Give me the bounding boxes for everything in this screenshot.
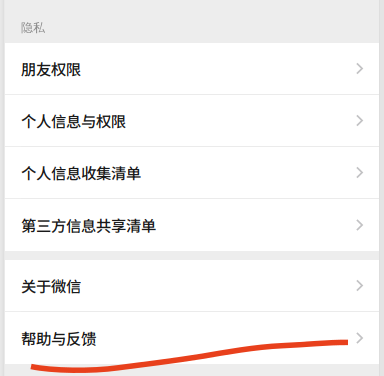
staticText: 朋友权限	[21, 57, 81, 80]
button[interactable]: 第三方信息共享清单	[5, 199, 379, 251]
staticText: 第三方信息共享清单	[21, 214, 156, 236]
button[interactable]: 关于微信	[5, 260, 379, 312]
staticText: 帮助与反馈	[21, 327, 96, 349]
button[interactable]: 朋友权限	[5, 43, 379, 95]
button[interactable]: 个人信息收集清单	[5, 147, 379, 199]
button[interactable]: 帮助与反馈	[5, 312, 379, 364]
staticText: 个人信息收集清单	[21, 161, 141, 184]
staticText: 隐私	[21, 20, 45, 35]
staticText: 个人信息与权限	[21, 109, 126, 132]
button[interactable]: 个人信息与权限	[5, 95, 379, 147]
staticText: 关于微信	[21, 274, 81, 297]
